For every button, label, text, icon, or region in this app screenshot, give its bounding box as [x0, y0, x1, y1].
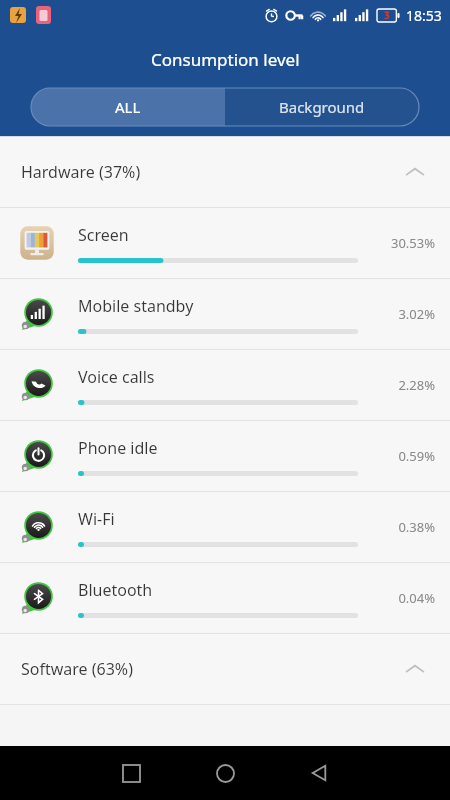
staticText: Screen: [78, 224, 129, 246]
staticText: ALL: [115, 97, 141, 117]
staticText: 0.59%: [398, 447, 435, 465]
button[interactable]: Voice calls: [0, 350, 450, 420]
staticText: Consumption level: [151, 48, 300, 71]
staticText: 0.04%: [398, 589, 435, 607]
button[interactable]: Background: [225, 88, 419, 126]
staticText: Wi-Fi: [78, 508, 115, 530]
staticText: 0.38%: [398, 518, 435, 536]
button[interactable]: Screen: [0, 208, 450, 278]
staticText: 30.53%: [390, 234, 435, 252]
staticText: 18:53: [406, 6, 442, 25]
staticText: Voice calls: [78, 366, 155, 388]
staticText: Bluetooth: [78, 579, 153, 601]
staticText: 2.28%: [398, 376, 435, 394]
staticText: Mobile standby: [78, 295, 194, 317]
other: Collapse section: [398, 652, 432, 686]
button[interactable]: Back: [272, 746, 366, 800]
staticText: 3.02%: [398, 305, 435, 323]
staticText: Phone idle: [78, 437, 158, 459]
staticText: Background: [279, 97, 365, 117]
staticText: Hardware (37%): [21, 161, 398, 183]
button[interactable]: ALL: [31, 88, 225, 126]
button[interactable]: Mobile standby: [0, 279, 450, 349]
button[interactable]: Phone idle: [0, 421, 450, 491]
button[interactable]: Home: [178, 746, 272, 800]
staticText: Software (63%): [21, 658, 398, 680]
button[interactable]: Recent apps: [84, 746, 178, 800]
other: Collapse section: [398, 155, 432, 189]
button[interactable]: Bluetooth: [0, 563, 450, 633]
button[interactable]: Wi-Fi: [0, 492, 450, 562]
button[interactable]: Software (63%): [0, 634, 450, 704]
button[interactable]: Hardware (37%): [0, 137, 450, 207]
